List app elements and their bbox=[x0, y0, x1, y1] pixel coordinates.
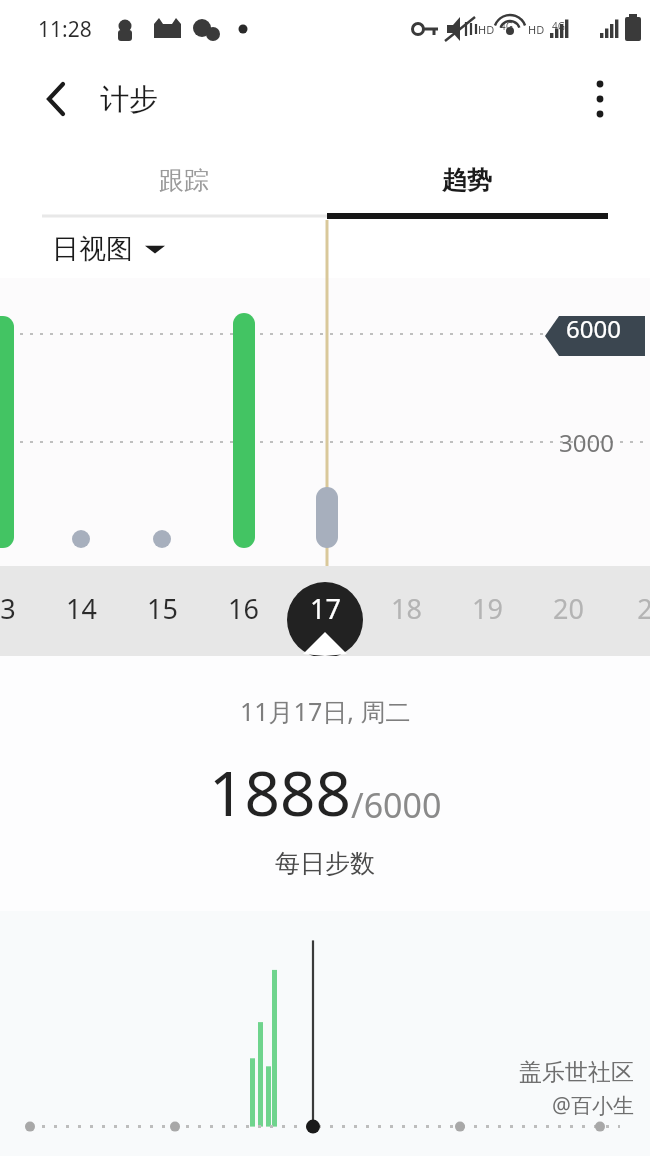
button[interactable]: Back bbox=[30, 73, 82, 125]
staticText: 盖乐世社区 bbox=[519, 1058, 634, 1087]
button[interactable]: More options bbox=[574, 73, 626, 125]
staticText: 3000 bbox=[559, 426, 614, 459]
staticText: 17 bbox=[310, 590, 341, 627]
button[interactable]: 3 bbox=[0, 572, 42, 644]
staticText: 3 bbox=[0, 590, 16, 627]
button[interactable]: 19 bbox=[453, 572, 521, 644]
button[interactable]: 跟踪 bbox=[42, 140, 325, 220]
button[interactable]: 趋势 bbox=[325, 140, 608, 220]
button[interactable]: 日视图 bbox=[52, 232, 165, 266]
button[interactable]: 17 bbox=[291, 572, 359, 644]
staticText: HD bbox=[478, 22, 495, 37]
staticText: 计步 bbox=[100, 81, 158, 118]
button[interactable]: 15 bbox=[128, 572, 196, 644]
button[interactable]: 2 bbox=[611, 572, 650, 644]
staticText: 跟踪 bbox=[159, 165, 209, 196]
staticText: 20 bbox=[553, 590, 584, 627]
staticText: HD bbox=[528, 22, 545, 37]
staticText: 15 bbox=[147, 590, 178, 627]
staticText: /6000 bbox=[351, 782, 442, 828]
staticText: 2 bbox=[637, 590, 650, 627]
staticText: 4G bbox=[500, 19, 513, 33]
staticText: 11:28 bbox=[38, 15, 92, 44]
staticText: 18 bbox=[391, 590, 422, 627]
staticText: @百小生 bbox=[552, 1091, 634, 1120]
button[interactable]: 14 bbox=[47, 572, 115, 644]
staticText: 1888 bbox=[209, 750, 351, 834]
button[interactable]: 20 bbox=[534, 572, 602, 644]
staticText: 趋势 bbox=[442, 165, 492, 196]
staticText: 6000 bbox=[566, 312, 621, 345]
button[interactable]: 18 bbox=[372, 572, 440, 644]
staticText: 11月17日, 周二 bbox=[240, 694, 411, 728]
button[interactable]: 16 bbox=[209, 572, 277, 644]
staticText: 14 bbox=[66, 590, 97, 627]
staticText: 4G bbox=[552, 19, 565, 33]
staticText: 日视图 bbox=[52, 232, 133, 266]
staticText: 每日步数 bbox=[275, 848, 375, 879]
staticText: 16 bbox=[228, 590, 259, 627]
staticText: 19 bbox=[472, 590, 503, 627]
